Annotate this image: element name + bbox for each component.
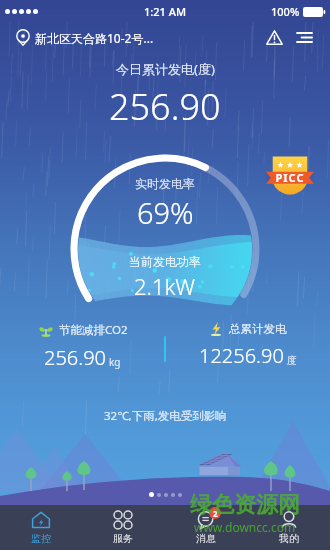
button[interactable]: 总累计发电 [165,322,330,369]
staticText: 1:21 AM [144,4,187,19]
staticText: 256.90 [44,344,106,371]
staticText: 256.90 [109,82,221,131]
staticText: 12256.90 [199,342,284,369]
staticText: 32℃,下雨,发电受到影响 [104,408,227,424]
button[interactable]: 新北区天合路10-2号... [16,29,154,46]
staticText: PICC [272,170,308,185]
staticText: 服务 [113,532,133,545]
button[interactable]: 我的 [247,505,330,550]
staticText: kg [109,355,121,369]
staticText: 当前发电功率 [129,254,201,269]
button[interactable]: 监控 [0,505,82,550]
button[interactable]: 节能减排CO2 [0,322,165,371]
staticText: 度 [287,354,297,367]
button[interactable]: PICC insurance badge [266,152,314,196]
staticText: 69% [137,193,194,232]
button[interactable]: 2 [164,505,247,550]
staticText: 监控 [31,532,51,545]
staticText: www.downcc.com [194,519,296,535]
button[interactable]: Warnings [262,25,286,49]
staticText: 节能减排CO2 [59,322,128,338]
staticText: 今日累计发电(度) [116,60,215,78]
staticText: 100% [271,4,300,19]
staticText: 2.1kW [134,271,196,301]
staticText: 消息 [196,532,216,545]
staticText: 实时发电率 [135,176,195,191]
staticText: 2 [213,508,218,519]
staticText: 总累计发电 [229,322,287,336]
staticText: 我的 [279,532,299,545]
staticText: 新北区天合路10-2号... [35,30,154,46]
button[interactable]: Menu [292,25,316,49]
staticText: 绿色资源网 [190,491,300,519]
button[interactable]: 服务 [82,505,164,550]
